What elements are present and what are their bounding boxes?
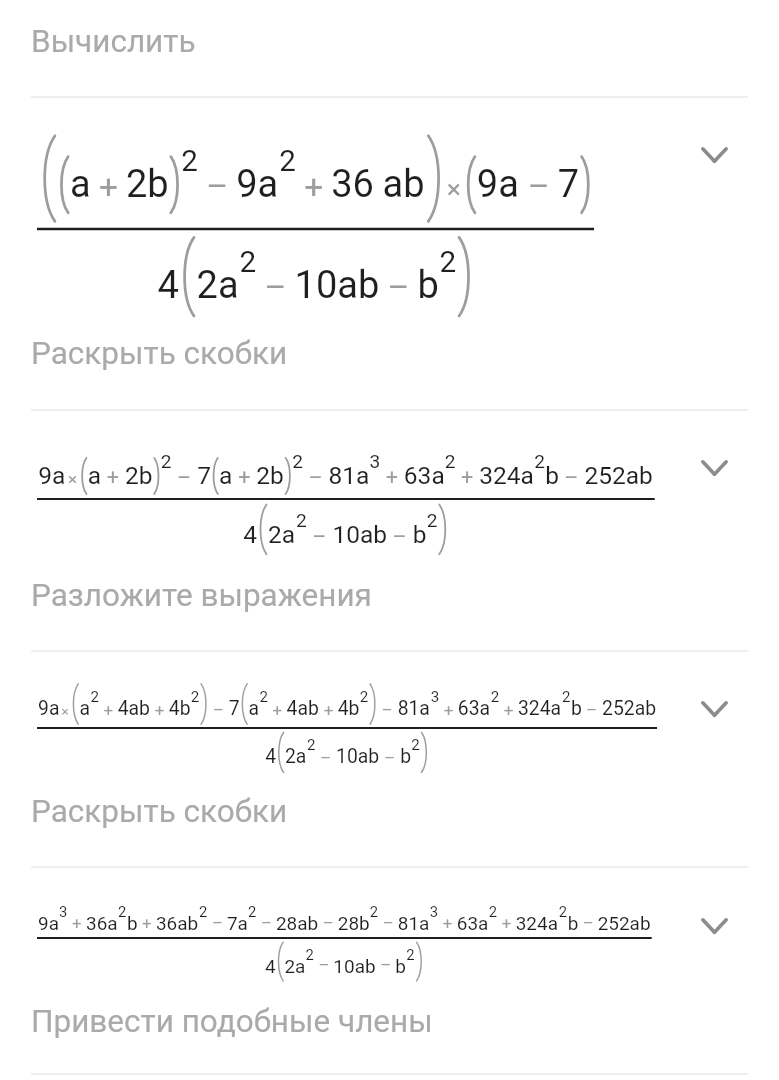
button[interactable] — [0, 0, 779, 1080]
staticText: Раскрыть скобки — [31, 793, 288, 830]
button[interactable]: Expand step — [690, 131, 738, 179]
staticText: Вычислить — [31, 23, 196, 60]
button[interactable] — [0, 0, 779, 1080]
button[interactable] — [0, 0, 779, 1080]
staticText: Раскрыть скобки — [31, 335, 288, 372]
button[interactable]: Expand step — [690, 444, 738, 492]
staticText: Привести подобные члены — [31, 1003, 433, 1040]
button[interactable] — [0, 0, 779, 1080]
staticText: Разложите выражения — [31, 577, 372, 614]
button[interactable]: Expand step — [690, 685, 738, 733]
button[interactable]: Expand step — [690, 902, 738, 950]
